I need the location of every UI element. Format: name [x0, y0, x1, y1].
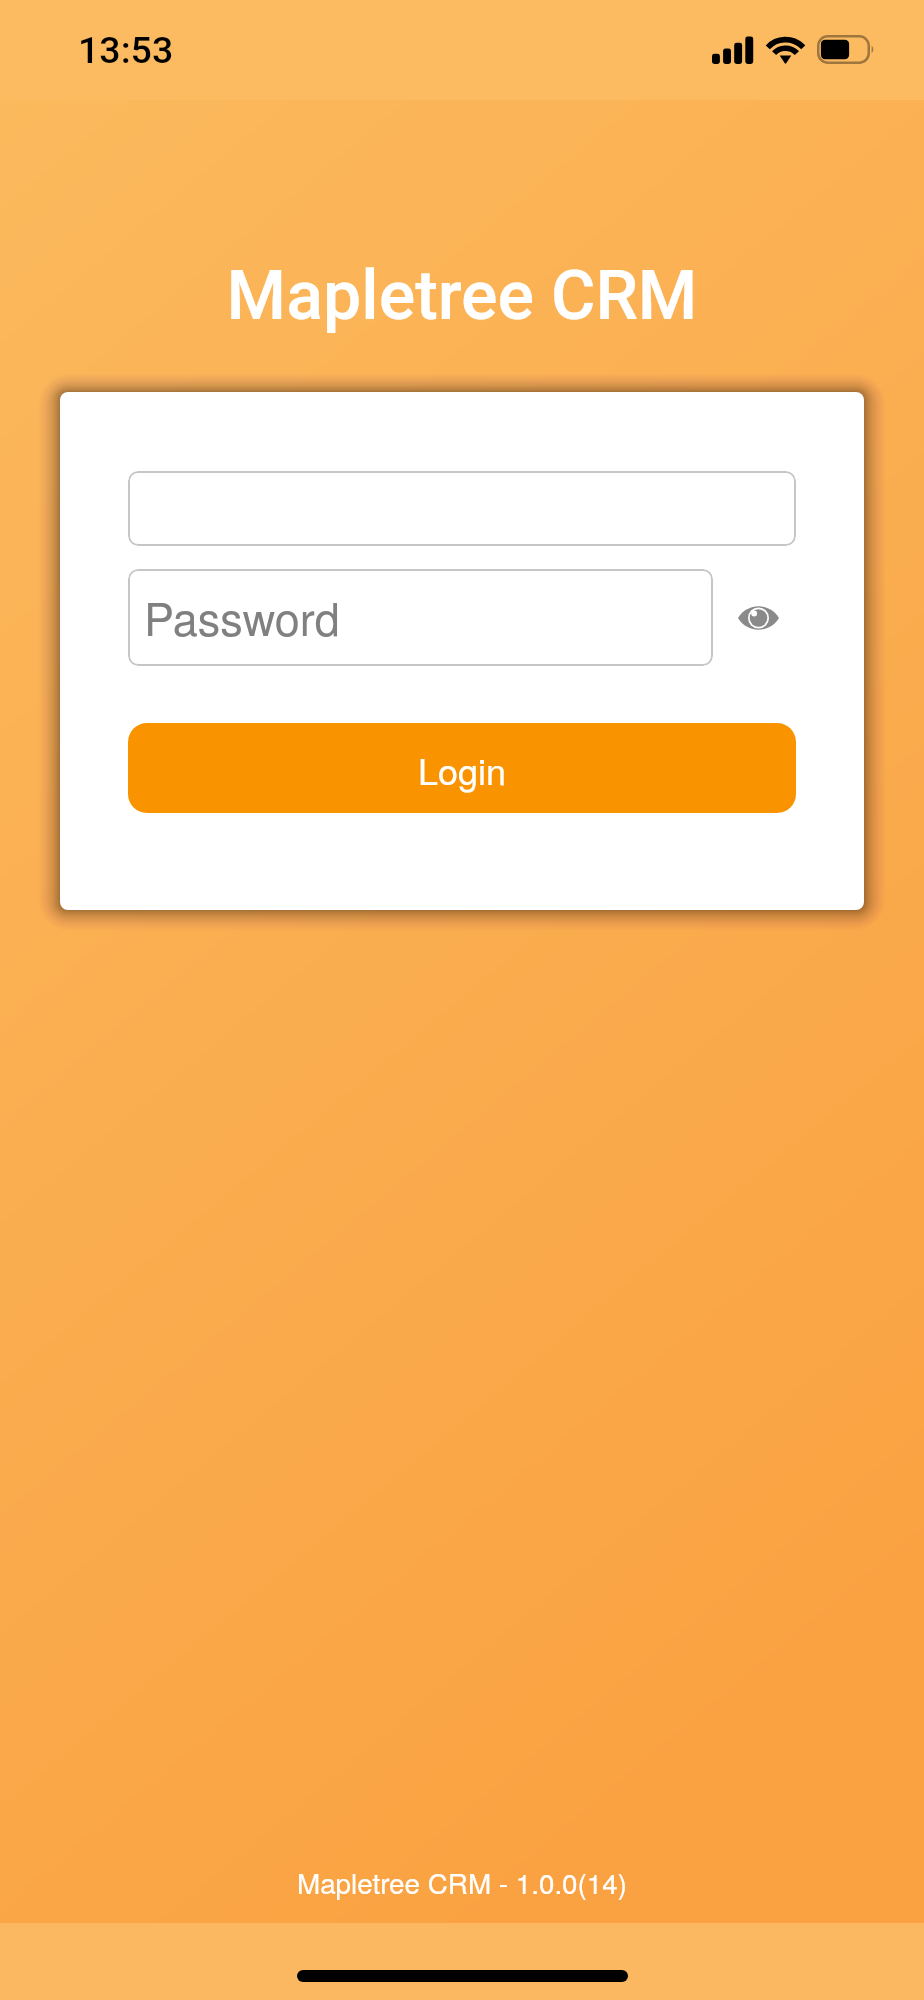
staticText: Mapletree CRM - 1.0.0(14): [0, 1862, 924, 1902]
button[interactable]: [128, 471, 796, 546]
staticText: Mapletree CRM: [0, 256, 924, 336]
staticText: 13:53: [78, 28, 174, 72]
staticText: Login: [418, 744, 507, 796]
staticText: Password: [144, 584, 340, 648]
button[interactable]: Password: [128, 569, 713, 666]
button[interactable]: Login: [128, 723, 796, 813]
button[interactable]: Show password: [731, 591, 785, 645]
